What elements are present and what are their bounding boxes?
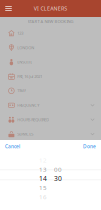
button[interactable]: SERVICES bbox=[0, 127, 101, 141]
staticText: 14 bbox=[39, 174, 47, 183]
staticText: 123 bbox=[17, 30, 23, 36]
button[interactable]: Cancel bbox=[1, 140, 24, 153]
staticText: LONDON bbox=[17, 45, 34, 50]
staticText: 16 bbox=[39, 193, 47, 201]
staticText: 15 bbox=[39, 183, 47, 192]
button[interactable]: 123 bbox=[0, 26, 101, 40]
button[interactable]: ENSUITE bbox=[0, 55, 101, 69]
staticText: 30 bbox=[54, 174, 62, 183]
button[interactable]: LONDON bbox=[0, 40, 101, 55]
staticText: VI CLEANERS bbox=[34, 5, 67, 12]
staticText: FRI, 16 Jul 2021 bbox=[17, 74, 42, 79]
staticText: START A NEW BOOKING bbox=[27, 19, 73, 24]
staticText: 12 bbox=[39, 156, 47, 164]
staticText: Done bbox=[83, 143, 96, 150]
button[interactable]: Done bbox=[79, 140, 100, 153]
button[interactable]: HOURS REQUIRED bbox=[0, 112, 101, 127]
button[interactable]: FREQUENCY bbox=[0, 98, 101, 112]
staticText: ENSUITE bbox=[17, 59, 32, 65]
button[interactable]: FRI, 16 Jul 2021 bbox=[0, 69, 101, 84]
staticText: Cancel bbox=[5, 143, 20, 150]
staticText: 00 bbox=[54, 165, 62, 173]
button[interactable]: TIME bbox=[0, 84, 101, 98]
button[interactable]: Menu bbox=[2, 2, 14, 14]
staticText: SERVICES bbox=[17, 131, 33, 137]
staticText: FREQUENCY bbox=[17, 102, 39, 108]
staticText: HOURS REQUIRED bbox=[17, 117, 49, 122]
staticText: 13 bbox=[39, 165, 47, 173]
staticText: TIME bbox=[17, 88, 26, 93]
